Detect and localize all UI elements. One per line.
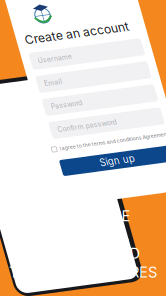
staticText: NAVIGATION, <box>36 226 129 243</box>
staticText: Confirm password <box>32 127 91 136</box>
button[interactable]: Sign up <box>25 161 137 177</box>
staticText: Create an account <box>25 34 129 48</box>
staticText: Sign up <box>63 163 98 175</box>
staticText: I agree to the terms and conditions Agre… <box>29 147 138 153</box>
staticText: Username <box>32 58 66 67</box>
staticText: EASY TO USE <box>35 207 130 225</box>
staticText: Email <box>32 81 50 90</box>
staticText: CONTROLS AND <box>25 244 140 262</box>
staticText: TAILORED FEATURES <box>9 263 157 281</box>
staticText: Password <box>32 104 63 113</box>
